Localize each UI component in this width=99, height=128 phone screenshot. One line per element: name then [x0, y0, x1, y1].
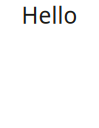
staticText: Hello [21, 0, 77, 30]
